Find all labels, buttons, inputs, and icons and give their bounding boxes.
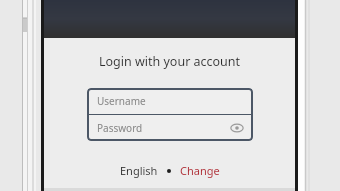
button[interactable]: Show password <box>229 120 245 136</box>
button[interactable]: Change <box>180 163 220 178</box>
staticText: Change <box>180 163 220 178</box>
staticText: English <box>120 163 158 178</box>
button[interactable]: Username <box>87 88 253 114</box>
button[interactable]: Password <box>87 115 253 141</box>
staticText: Password <box>97 121 143 135</box>
staticText: Username <box>97 94 146 108</box>
button[interactable]: English <box>120 163 158 178</box>
staticText: Login with your account <box>44 53 295 70</box>
